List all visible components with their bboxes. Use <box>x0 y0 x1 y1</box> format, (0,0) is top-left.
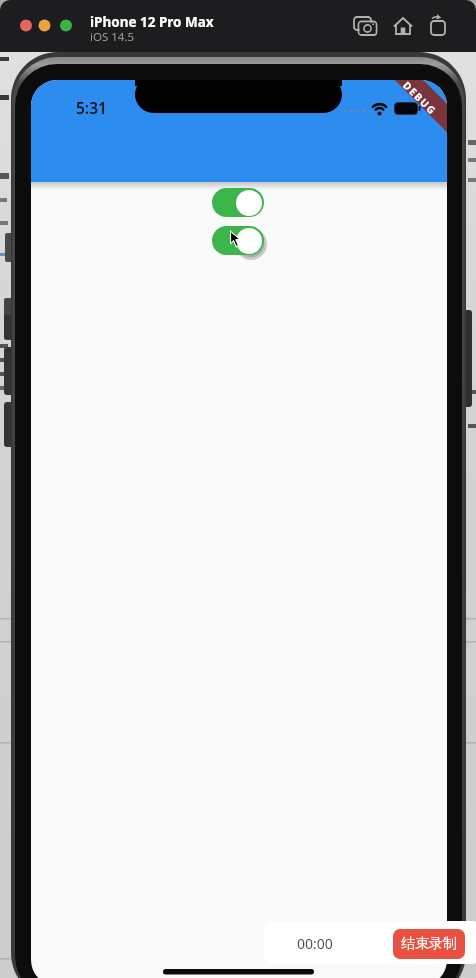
staticText: iPhone 12 Pro Max <box>90 13 214 31</box>
button[interactable] <box>59 19 72 32</box>
staticText: iOS 14.5 <box>90 29 135 45</box>
staticText: 00:00 <box>297 934 333 953</box>
button[interactable] <box>38 19 51 32</box>
button[interactable] <box>427 13 449 38</box>
staticText: 结束录制 <box>401 935 457 953</box>
button[interactable]: 结束录制 <box>393 929 465 959</box>
button[interactable] <box>391 13 414 38</box>
button[interactable] <box>351 13 379 38</box>
staticText: 5:31 <box>76 97 107 118</box>
staticText: DEBUG <box>400 78 440 118</box>
button[interactable] <box>20 19 33 32</box>
button[interactable] <box>212 226 264 255</box>
button[interactable] <box>212 188 264 217</box>
